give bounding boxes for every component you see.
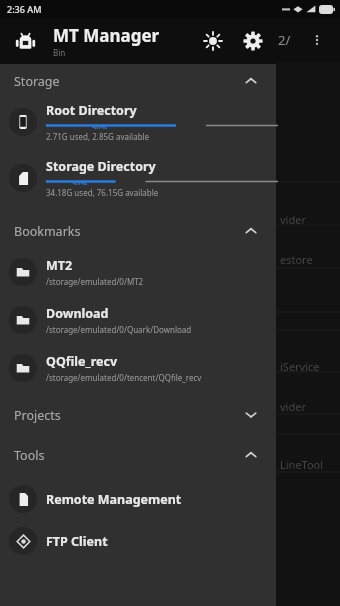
button[interactable]: App logo xyxy=(10,26,40,56)
button[interactable]: FTP Client xyxy=(0,520,276,562)
staticText: /storage/emulated/0/Quark/Download xyxy=(46,324,192,335)
button[interactable]: Storage Directory xyxy=(0,154,276,202)
staticText: 30% xyxy=(72,178,88,185)
staticText: Remote Management xyxy=(46,491,182,508)
staticText: 56% xyxy=(92,122,108,129)
staticText: Storage xyxy=(14,73,244,90)
staticText: 2:36 AM xyxy=(7,3,42,15)
button[interactable]: QQfile_recv xyxy=(0,344,276,392)
button[interactable]: Tools xyxy=(0,438,276,472)
staticText: Bin xyxy=(53,47,66,58)
staticText: iService xyxy=(280,359,320,374)
button[interactable]: Brightness xyxy=(196,24,230,58)
staticText: Root Directory xyxy=(46,102,137,119)
staticText: MT Manager xyxy=(53,24,160,47)
staticText: Projects xyxy=(14,407,244,424)
button[interactable]: Projects xyxy=(0,398,276,432)
staticText: estore xyxy=(280,252,313,267)
staticText: Download xyxy=(46,305,109,322)
staticText: 2/ xyxy=(278,31,291,49)
staticText: LineTool xyxy=(280,457,324,472)
button[interactable]: More options xyxy=(302,25,332,55)
button[interactable]: Bookmarks xyxy=(0,214,276,248)
staticText: Storage Directory xyxy=(46,158,156,175)
staticText: FTP Client xyxy=(46,533,108,550)
staticText: 34.18G used, 76.15G available xyxy=(46,187,159,198)
button[interactable]: Settings xyxy=(236,24,270,58)
button[interactable]: Remote Management xyxy=(0,478,276,520)
button[interactable]: Storage xyxy=(0,64,276,98)
staticText: QQfile_recv xyxy=(46,353,118,370)
staticText: /storage/emulated/0/MT2 xyxy=(46,276,144,287)
staticText: vider xyxy=(280,399,306,414)
staticText: Tools xyxy=(14,447,244,464)
staticText: /storage/emulated/0/tencent/QQfile_recv xyxy=(46,372,202,383)
staticText: 2.71G used, 2.85G available xyxy=(46,131,150,142)
staticText: MT2 xyxy=(46,257,73,274)
staticText: vider xyxy=(280,212,306,227)
button[interactable]: Root Directory xyxy=(0,98,276,146)
button[interactable]: MT2 xyxy=(0,248,276,296)
button[interactable]: Download xyxy=(0,296,276,344)
staticText: Bookmarks xyxy=(14,223,244,240)
